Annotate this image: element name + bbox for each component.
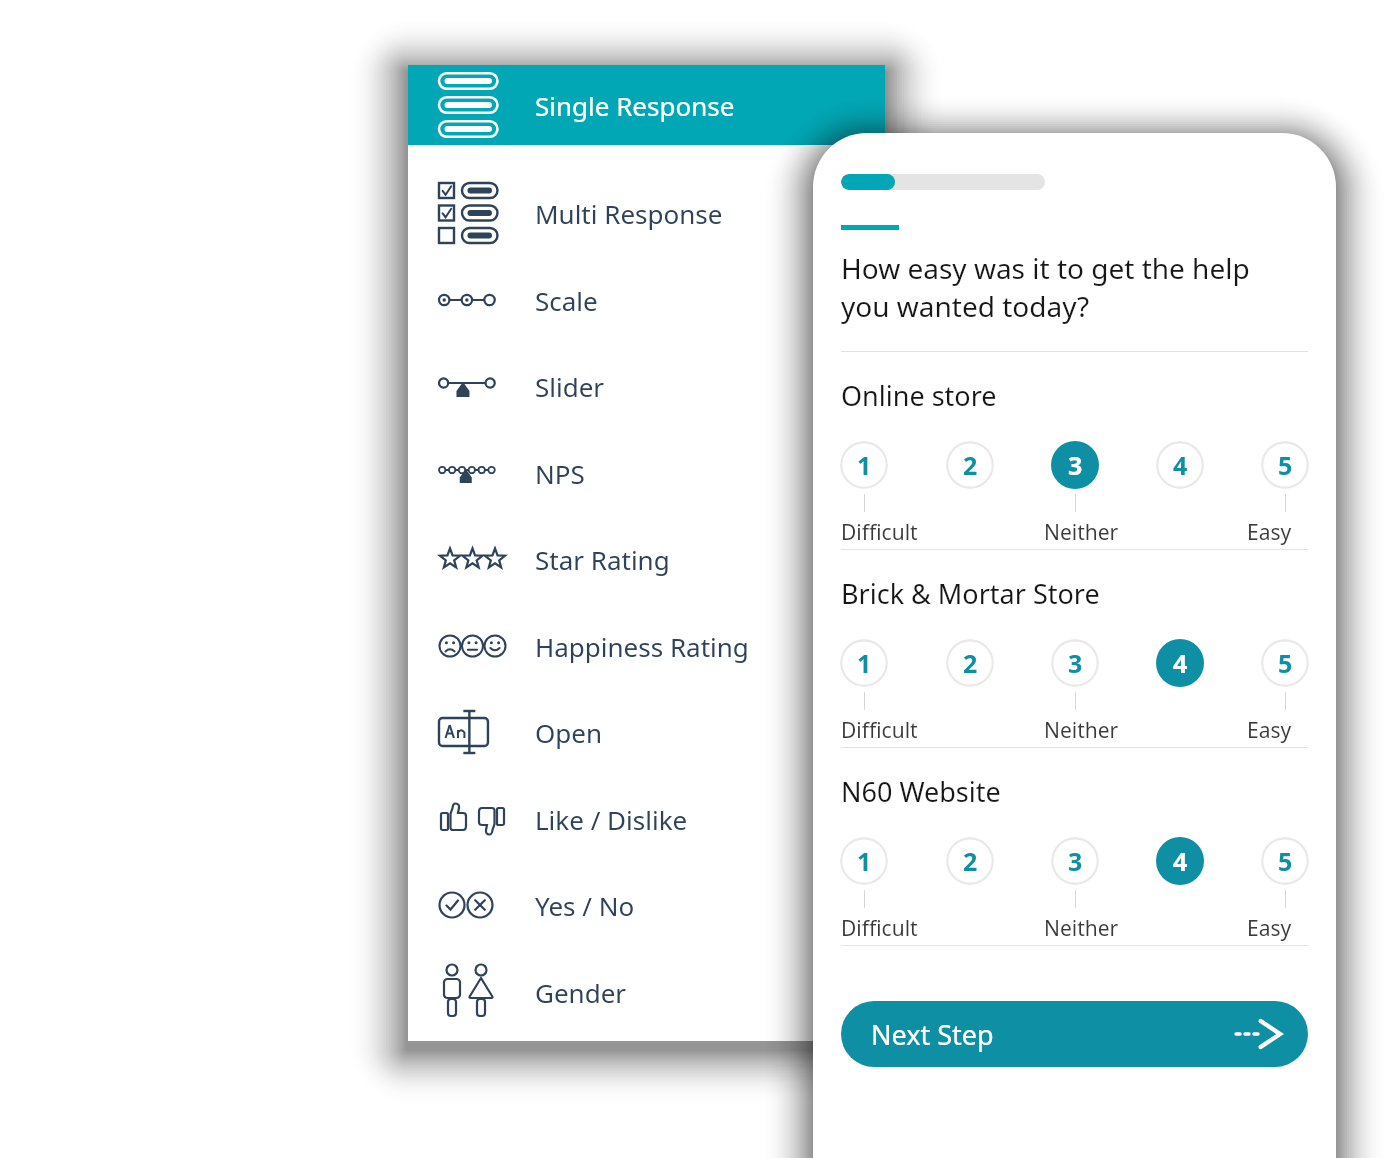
button[interactable]: Rating 1 [840,639,888,687]
button[interactable]: Rating 3 [1051,441,1099,489]
button[interactable]: Rating 1 [840,837,888,885]
staticText: N60 Website [841,773,1001,810]
button[interactable]: Yes / No [408,862,885,948]
button[interactable]: Rating 2 [946,639,994,687]
button[interactable]: Rating 4 [1156,837,1204,885]
staticText: Easy [1247,914,1292,943]
staticText: Happiness Rating [535,629,749,664]
staticText: Single Response [535,88,735,123]
button[interactable]: Like / Dislike [408,776,885,862]
staticText: Slider [535,369,605,404]
staticText: Difficult [841,914,918,943]
staticText: 2 [963,448,978,482]
staticText: 5 [1278,844,1293,878]
staticText: Star Rating [535,542,670,577]
button[interactable]: Rating 4 [1156,441,1204,489]
button[interactable]: Rating 3 [1051,639,1099,687]
staticText: NPS [535,456,585,491]
staticText: 4 [1173,844,1188,878]
staticText: 5 [1278,448,1293,482]
staticText: Easy [1247,518,1292,547]
staticText: Difficult [841,518,918,547]
button[interactable]: Star Rating [408,516,885,602]
staticText: Open [535,715,603,750]
button[interactable]: Slider [408,343,885,429]
staticText: 5 [1278,646,1293,680]
staticText: Neither [1044,518,1119,547]
button[interactable]: Rating 1 [840,441,888,489]
staticText: Scale [535,283,598,318]
staticText: 1 [857,448,872,482]
staticText: 3 [1068,646,1083,680]
staticText: Next Step [871,1016,994,1053]
button[interactable]: Rating 5 [1261,837,1309,885]
staticText: Online store [841,377,997,414]
button[interactable]: Happiness Rating [408,603,885,689]
staticText: Neither [1044,716,1119,745]
button[interactable]: Next Step [841,1001,1308,1067]
staticText: Brick & Mortar Store [841,575,1100,612]
button[interactable]: Single Response [408,65,885,145]
button[interactable]: Multi Response [408,170,885,256]
button[interactable]: Rating 2 [946,837,994,885]
staticText: Yes / No [535,888,635,923]
button[interactable]: Gender [408,949,885,1035]
staticText: 3 [1068,448,1083,482]
button[interactable]: Rating 5 [1261,639,1309,687]
staticText: Gender [535,975,627,1010]
staticText: Difficult [841,716,918,745]
staticText: 2 [963,844,978,878]
staticText: 4 [1173,448,1188,482]
staticText: 1 [857,646,872,680]
staticText: 1 [857,844,872,878]
button[interactable]: Scale [408,257,885,343]
button[interactable]: NPS [408,430,885,516]
staticText: 4 [1173,646,1188,680]
staticText: Easy [1247,716,1292,745]
staticText: Multi Response [535,196,723,231]
staticText: 3 [1068,844,1083,878]
button[interactable]: Rating 5 [1261,441,1309,489]
staticText: How easy was it to get the help you want… [841,249,1291,325]
staticText: Neither [1044,914,1119,943]
staticText: 2 [963,646,978,680]
staticText: Like / Dislike [535,802,688,837]
button[interactable]: Rating 4 [1156,639,1204,687]
button[interactable]: Rating 3 [1051,837,1099,885]
button[interactable]: Open [408,689,885,775]
button[interactable]: Rating 2 [946,441,994,489]
